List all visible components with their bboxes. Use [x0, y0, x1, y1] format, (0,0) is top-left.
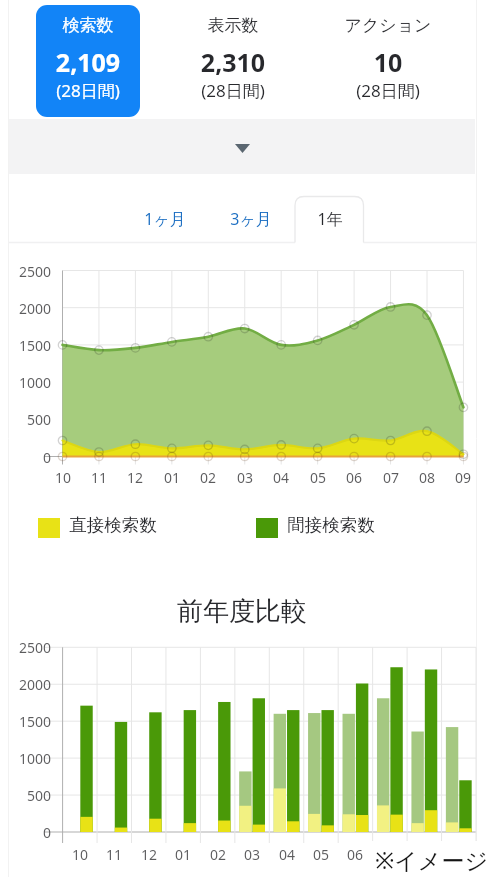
staticText: 1500: [0, 336, 51, 355]
staticText: 1年: [317, 208, 343, 230]
staticText: 検索数: [0, 15, 178, 36]
staticText: 07: [373, 468, 409, 487]
staticText: アクション: [298, 15, 478, 36]
staticText: (28日間): [143, 79, 323, 102]
staticText: 12: [131, 845, 167, 864]
staticText: 06: [337, 845, 373, 864]
staticText: 11: [96, 845, 132, 864]
staticText: 2500: [0, 262, 51, 281]
button[interactable]: Expand details: [9, 119, 475, 174]
staticText: 05: [300, 468, 336, 487]
staticText: 12: [117, 468, 153, 487]
staticText: 500: [0, 410, 51, 429]
staticText: 10: [298, 45, 478, 79]
staticText: 間接検索数: [287, 514, 375, 536]
staticText: 09: [441, 845, 477, 864]
staticText: 11: [81, 468, 117, 487]
staticText: (28日間): [298, 79, 478, 102]
staticText: 03: [227, 468, 263, 487]
staticText: 500: [0, 786, 51, 805]
staticText: (28日間): [0, 79, 178, 102]
button[interactable]: [36, 5, 140, 117]
staticText: ※イメージ: [375, 844, 488, 875]
staticText: 2,310: [143, 45, 323, 79]
staticText: 2000: [0, 299, 51, 318]
staticText: 直接検索数: [69, 514, 157, 536]
button[interactable]: 3ヶ月: [207, 196, 295, 242]
staticText: 1000: [0, 749, 51, 768]
staticText: 表示数: [143, 15, 323, 36]
staticText: 02: [200, 845, 236, 864]
staticText: 0: [0, 823, 51, 842]
staticText: 2500: [0, 638, 51, 657]
staticText: 10: [62, 845, 98, 864]
staticText: 09: [445, 468, 481, 487]
staticText: 2000: [0, 675, 51, 694]
staticText: 01: [165, 845, 201, 864]
staticText: 1ヶ月: [144, 208, 186, 230]
staticText: 03: [234, 845, 270, 864]
staticText: 04: [269, 845, 305, 864]
staticText: 1500: [0, 712, 51, 731]
staticText: 06: [336, 468, 372, 487]
staticText: 10: [45, 468, 81, 487]
staticText: 04: [263, 468, 299, 487]
staticText: 08: [409, 468, 445, 487]
staticText: 1000: [0, 373, 51, 392]
staticText: 02: [190, 468, 226, 487]
staticText: 07: [372, 845, 408, 864]
staticText: 01: [154, 468, 190, 487]
button[interactable]: 1年: [295, 196, 364, 242]
staticText: 2,109: [0, 45, 178, 79]
staticText: 3ヶ月: [230, 208, 272, 230]
staticText: 0: [0, 448, 51, 467]
staticText: 前年度比較: [8, 595, 476, 628]
button[interactable]: 1ヶ月: [122, 196, 207, 242]
staticText: 08: [406, 845, 442, 864]
staticText: 05: [303, 845, 339, 864]
